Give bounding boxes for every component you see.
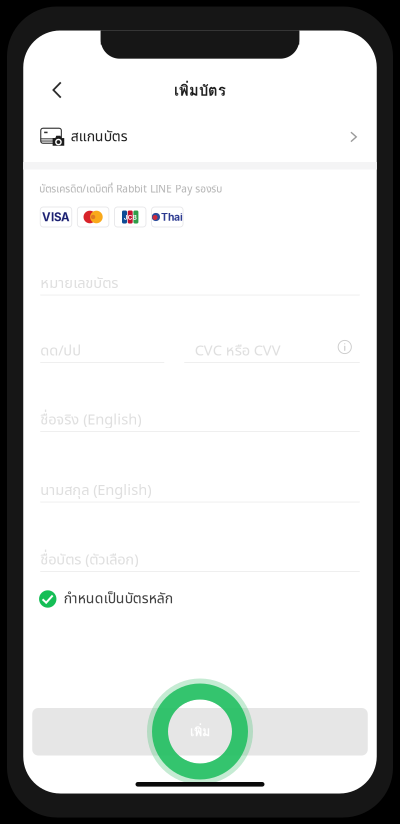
staticText: CVC หรือ CVV [195,340,281,362]
staticText: ดด/ปป [40,340,81,362]
staticText: VISA [42,210,70,224]
staticText: บัตรเครดิต/เดบิตที่ Rabbit LINE Pay รองร… [39,182,222,197]
staticText: กำหนดเป็นบัตรหลัก [64,588,173,610]
staticText: เพิ่มบัตร [174,79,226,102]
staticText: ชื่อจริง (English) [40,409,141,431]
staticText: นามสกุล (English) [40,479,151,502]
button[interactable]: สแกนบัตร [23,121,377,153]
staticText: Thai [161,211,183,223]
button[interactable]: Back [43,76,71,104]
button[interactable]: What is a CVC [337,339,353,355]
staticText: JCB [124,214,137,221]
button[interactable]: เพิ่ม [32,708,368,755]
staticText: ชื่อบัตร (ตัวเลือก) [40,549,138,571]
staticText: เพิ่ม [190,722,210,742]
button[interactable]: กำหนดเป็นบัตรหลัก [39,589,358,609]
staticText: หมายเลขบัตร [40,272,118,295]
staticText: สแกนบัตร [71,126,128,148]
